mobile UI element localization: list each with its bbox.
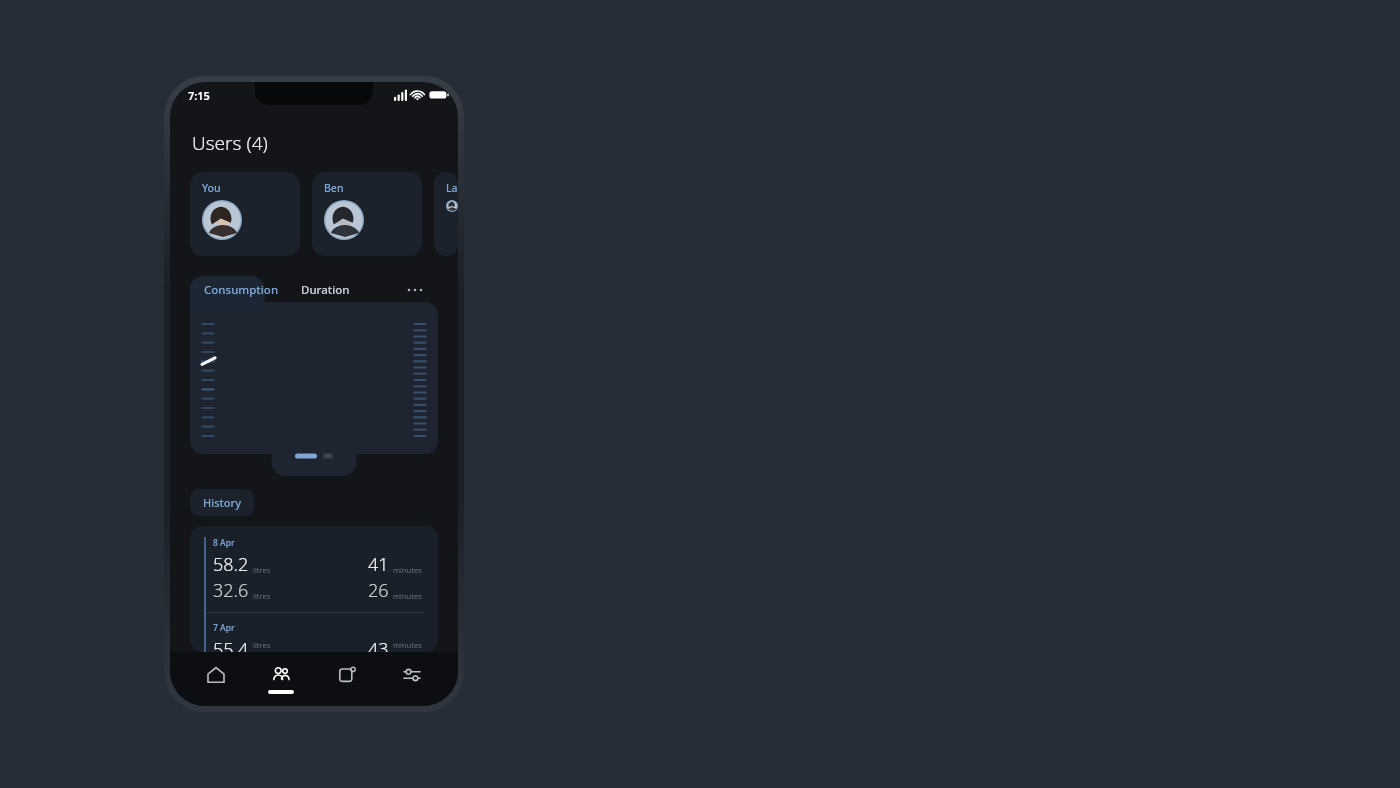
button[interactable]: History xyxy=(190,489,254,516)
staticText: 55.4 xyxy=(213,637,249,652)
staticText: La xyxy=(446,181,458,195)
staticText: Consumption xyxy=(204,282,279,298)
staticText: 32.6 xyxy=(213,578,249,603)
staticText: 7 Apr xyxy=(213,622,235,634)
staticText: 7:15 xyxy=(188,88,210,103)
button[interactable]: Home xyxy=(192,654,240,704)
staticText: 41 xyxy=(368,552,389,577)
staticText: Users (4) xyxy=(192,130,268,156)
button[interactable]: Users xyxy=(257,654,305,704)
button[interactable]: Consumption xyxy=(202,282,281,298)
button[interactable]: Reports xyxy=(323,654,371,704)
staticText: litres xyxy=(253,591,271,601)
staticText: History xyxy=(203,495,241,510)
staticText: litres xyxy=(253,565,271,575)
button[interactable]: Ben xyxy=(312,172,422,256)
staticText: 43 xyxy=(368,637,389,652)
staticText: 58.2 xyxy=(213,552,249,577)
staticText: Ben xyxy=(324,181,344,195)
staticText: minutes xyxy=(393,591,422,601)
staticText: 26 xyxy=(368,578,389,603)
staticText: Duration xyxy=(301,282,350,298)
staticText: 8 Apr xyxy=(213,537,235,549)
button[interactable]: You xyxy=(190,172,300,256)
staticText: You xyxy=(202,181,221,195)
button[interactable]: 8 Apr xyxy=(190,526,438,652)
button[interactable]: Settings xyxy=(388,654,436,704)
staticText: minutes xyxy=(393,565,422,575)
staticText: minutes xyxy=(393,640,422,650)
button[interactable]: La xyxy=(434,172,458,256)
staticText: litres xyxy=(253,640,271,650)
button[interactable]: More options xyxy=(404,279,426,301)
button[interactable]: Duration xyxy=(299,282,352,298)
